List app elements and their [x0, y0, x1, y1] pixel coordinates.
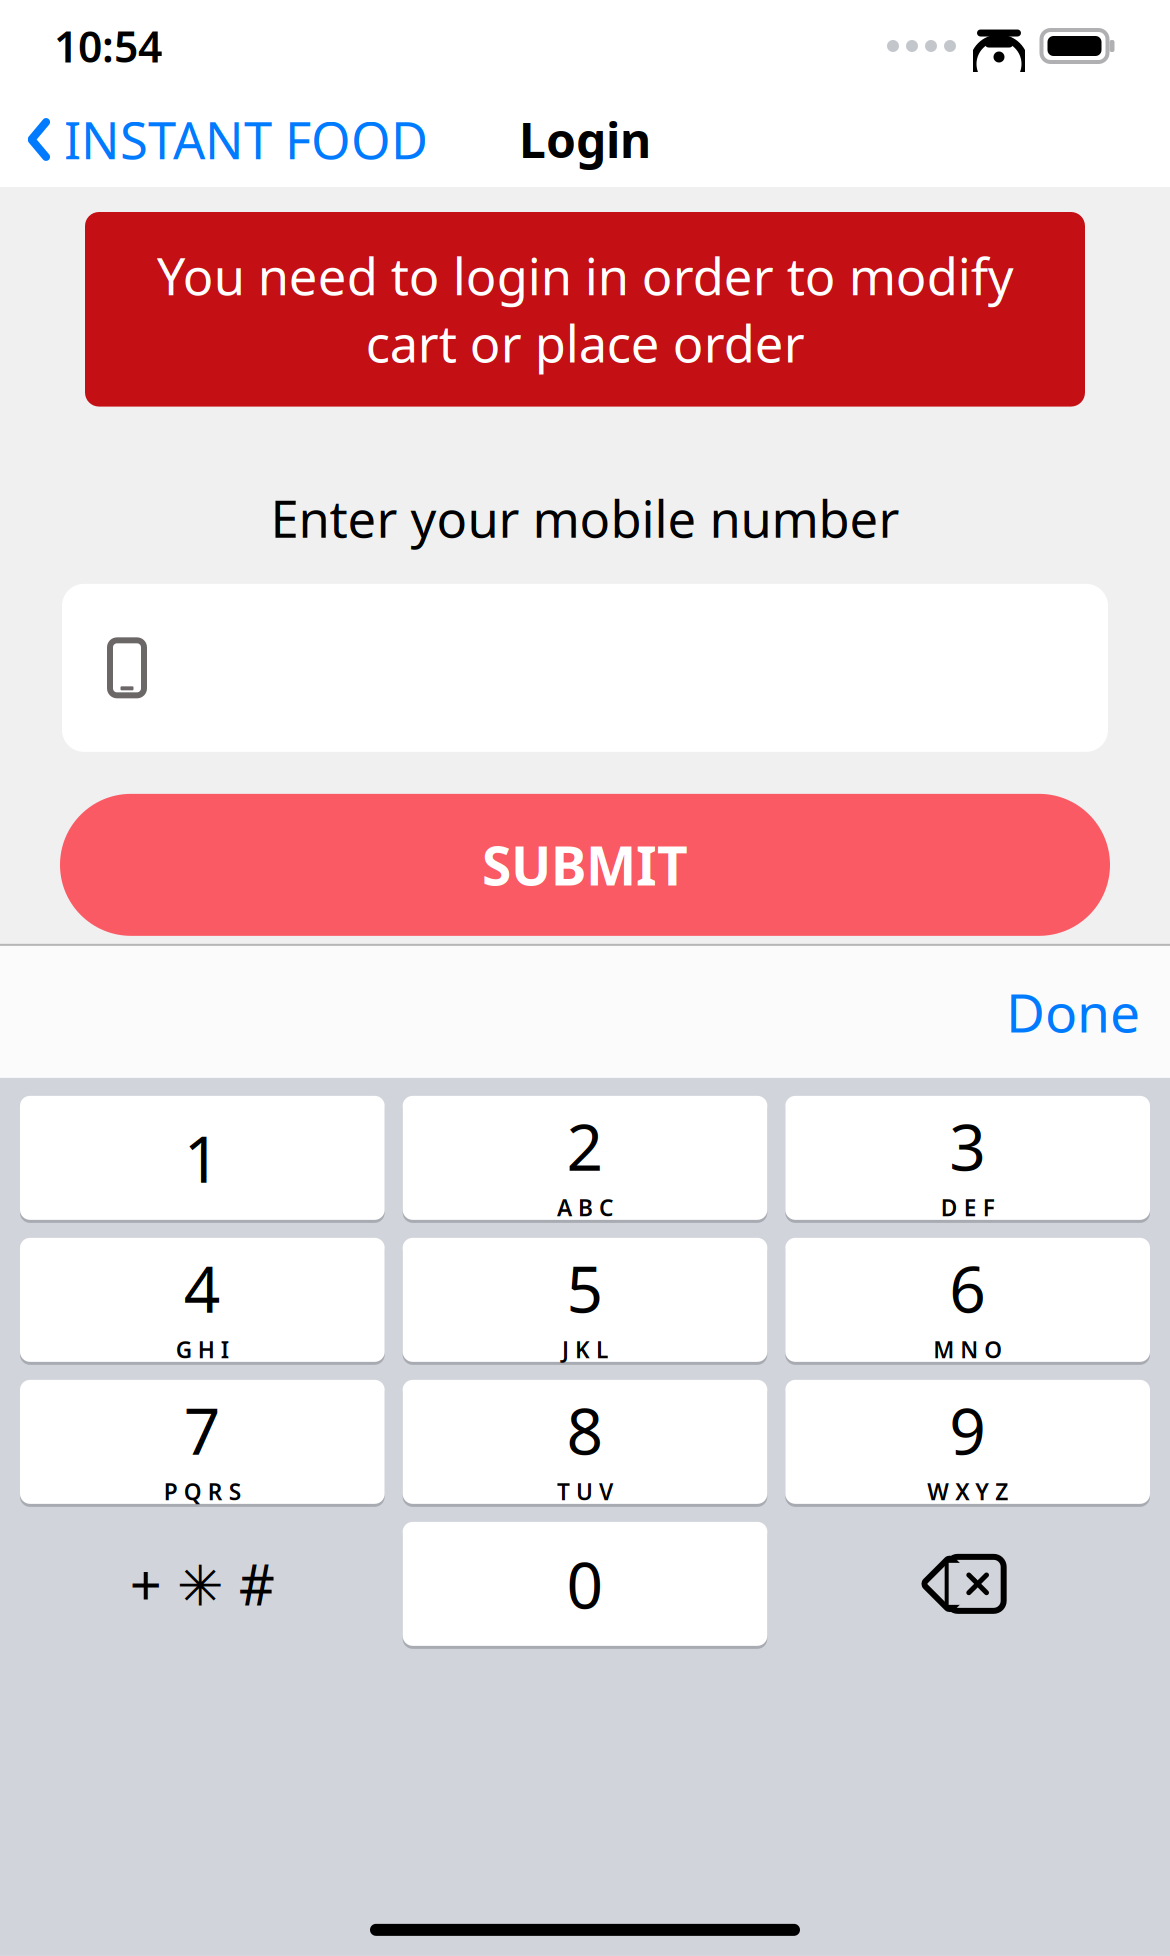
- button[interactable]: 2: [403, 1096, 767, 1220]
- staticText: 0: [566, 1541, 603, 1626]
- button[interactable]: 4: [20, 1238, 385, 1362]
- button[interactable]: 1: [20, 1096, 385, 1220]
- button[interactable]: 5: [403, 1238, 767, 1362]
- staticText: SUBMIT: [482, 829, 688, 900]
- staticText: 8: [566, 1387, 603, 1472]
- staticText: T U V: [557, 1476, 613, 1506]
- button[interactable]: SUBMIT: [60, 794, 1110, 936]
- button[interactable]: 7: [20, 1380, 385, 1504]
- staticText: W X Y Z: [927, 1476, 1008, 1506]
- staticText: 3: [949, 1103, 986, 1188]
- staticText: D E F: [941, 1192, 995, 1222]
- staticText: INSTANT FOOD: [64, 106, 428, 173]
- staticText: 4: [184, 1245, 221, 1330]
- button[interactable]: Delete: [785, 1522, 1150, 1646]
- button[interactable]: Done: [1006, 966, 1170, 1057]
- staticText: M N O: [933, 1334, 1002, 1364]
- staticText: Login: [519, 108, 651, 171]
- staticText: You need to login in order to modify car…: [156, 242, 1013, 377]
- staticText: A B C: [557, 1192, 613, 1222]
- staticText: P Q R S: [164, 1476, 241, 1506]
- staticText: 1: [184, 1115, 221, 1200]
- button[interactable]: 0: [403, 1522, 767, 1646]
- staticText: 9: [949, 1387, 986, 1472]
- staticText: 6: [949, 1245, 986, 1330]
- staticText: 5: [566, 1245, 603, 1330]
- button[interactable]: Symbols: [20, 1522, 385, 1646]
- button[interactable]: INSTANT FOOD: [0, 98, 440, 181]
- staticText: 2: [566, 1103, 603, 1188]
- staticText: 7: [184, 1387, 221, 1472]
- button[interactable]: 3: [785, 1096, 1150, 1220]
- staticText: Enter your mobile number: [270, 485, 899, 552]
- staticText: J K L: [562, 1334, 608, 1364]
- staticText: 10:54: [54, 18, 162, 74]
- button[interactable]: 6: [785, 1238, 1150, 1362]
- button[interactable]: 8: [403, 1380, 767, 1504]
- staticText: Done: [1006, 976, 1140, 1047]
- staticText: + ✳ #: [130, 1547, 275, 1621]
- staticText: G H I: [176, 1334, 229, 1364]
- button[interactable]: 9: [785, 1380, 1150, 1504]
